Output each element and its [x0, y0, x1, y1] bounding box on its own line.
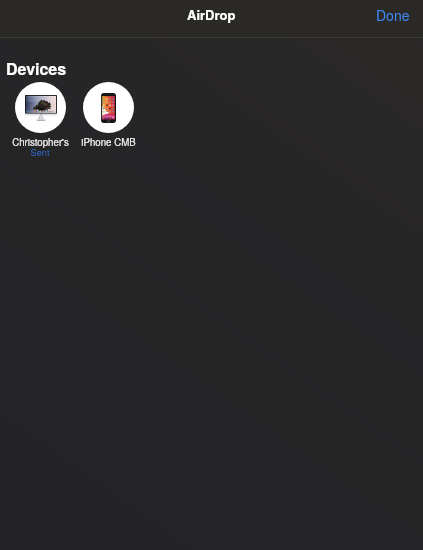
staticText: Christopher's [12, 135, 69, 149]
button[interactable]: iPhone CMB [74, 82, 142, 149]
button[interactable]: Christopher's [6, 82, 74, 162]
button[interactable]: Done [358, 0, 423, 37]
staticText: Devices [6, 57, 67, 80]
staticText: Done [376, 5, 410, 25]
staticText: Sent [30, 145, 50, 158]
staticText: iPhone CMB [81, 135, 136, 149]
staticText: AirDrop [187, 5, 236, 24]
